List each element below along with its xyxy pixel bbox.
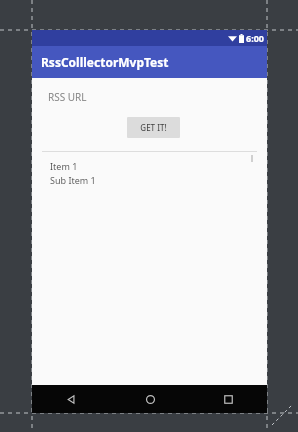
staticText: RssColllectorMvpTest <box>41 54 169 70</box>
staticText: RSS URL <box>48 90 87 104</box>
button[interactable]: GET IT! <box>127 117 180 138</box>
button[interactable]: Home <box>111 385 189 413</box>
button[interactable]: Recent apps <box>189 385 267 413</box>
staticText: Sub Item 1 <box>50 174 96 186</box>
staticText: Item 1 <box>50 160 78 172</box>
staticText: GET IT! <box>140 122 167 133</box>
button[interactable]: RSS URL <box>32 86 267 108</box>
staticText: 6:00 <box>246 32 264 44</box>
button[interactable]: Item 1 <box>32 152 267 186</box>
button[interactable]: Back <box>32 385 111 413</box>
